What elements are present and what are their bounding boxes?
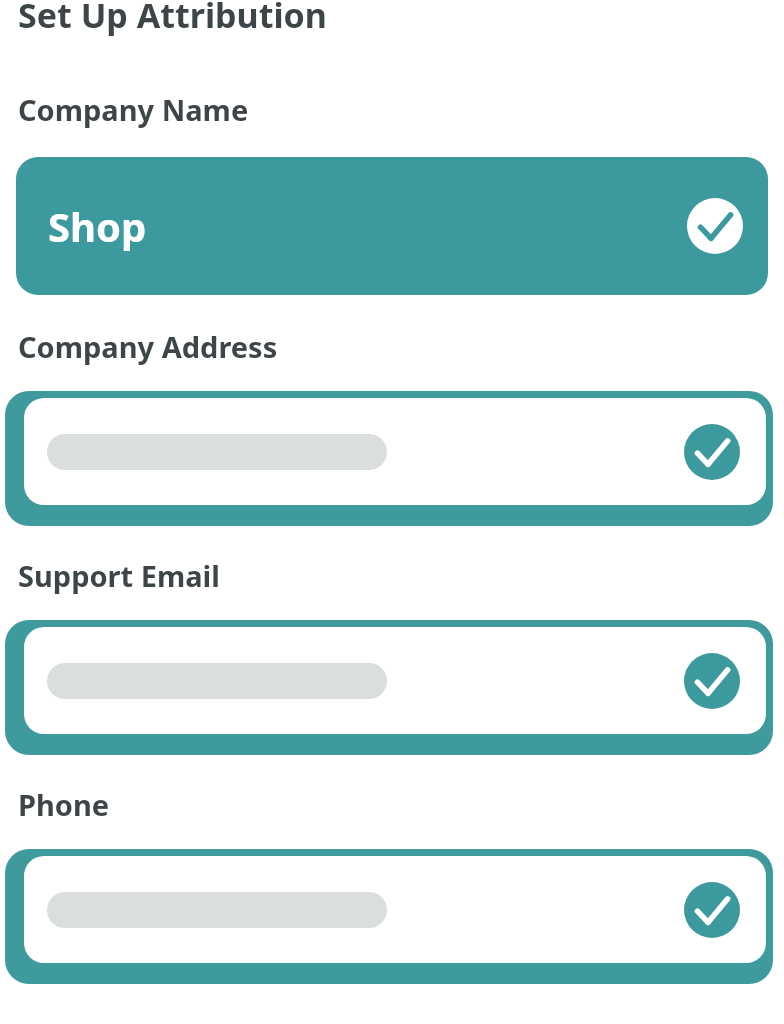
staticText: Company Address <box>18 327 278 366</box>
staticText: Shop <box>48 199 147 253</box>
button[interactable]: Verified <box>2 849 782 984</box>
other: Verified <box>684 653 740 709</box>
staticText: Support Email <box>18 556 220 595</box>
staticText: Phone <box>18 785 110 824</box>
other: Verified <box>684 882 740 938</box>
button[interactable]: Shop <box>16 157 768 295</box>
other: Verified <box>684 424 740 480</box>
staticText: Company Name <box>18 90 249 129</box>
staticText: Set Up Attribution <box>18 0 327 38</box>
button[interactable]: Verified <box>2 391 782 526</box>
button[interactable]: Verified <box>2 620 782 755</box>
